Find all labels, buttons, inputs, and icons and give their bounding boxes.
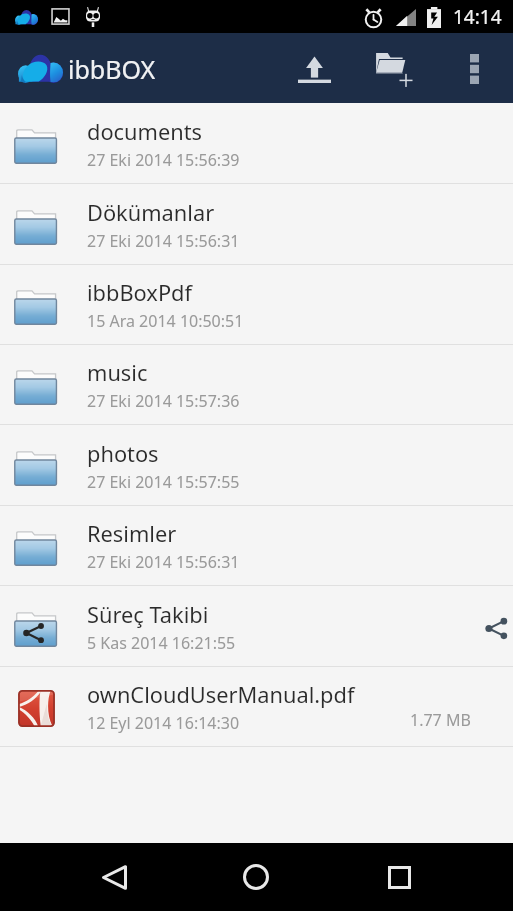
staticText: ownCloudUserManual.pdf: [87, 680, 355, 710]
staticText: 27 Eki 2014 15:56:31: [87, 551, 240, 573]
staticText: 27 Eki 2014 15:57:55: [87, 471, 240, 493]
button[interactable]: Home: [224, 845, 288, 909]
button[interactable]: Süreç Takibi: [0, 587, 513, 667]
button[interactable]: Upload: [282, 33, 346, 103]
button[interactable]: music: [0, 345, 513, 425]
staticText: photos: [87, 439, 159, 469]
button[interactable]: Back: [82, 845, 146, 909]
staticText: 12 Eyl 2014 16:14:30: [87, 712, 240, 734]
button[interactable]: New folder: [357, 33, 429, 103]
staticText: 14:14: [453, 4, 502, 30]
staticText: 27 Eki 2014 15:56:31: [87, 230, 240, 252]
button[interactable]: Share: [467, 587, 513, 666]
staticText: 1.77 MB: [410, 709, 471, 731]
staticText: documents: [87, 117, 202, 147]
staticText: 5 Kas 2014 16:21:55: [87, 632, 236, 654]
button[interactable]: photos: [0, 426, 513, 506]
staticText: music: [87, 358, 148, 388]
staticText: ibbBoxPdf: [87, 278, 192, 308]
button[interactable]: Recents: [367, 845, 431, 909]
button[interactable]: ownCloudUserManual.pdf: [0, 667, 513, 747]
staticText: 27 Eki 2014 15:57:36: [87, 390, 240, 412]
staticText: Süreç Takibi: [87, 600, 209, 630]
button[interactable]: Dökümanlar: [0, 185, 513, 265]
staticText: 15 Ara 2014 10:50:51: [87, 310, 244, 332]
staticText: ibbBOX: [68, 52, 156, 86]
button[interactable]: Resimler: [0, 506, 513, 586]
staticText: Dökümanlar: [87, 198, 215, 228]
button[interactable]: documents: [0, 104, 513, 184]
button[interactable]: ibbBoxPdf: [0, 265, 513, 345]
staticText: 27 Eki 2014 15:56:39: [87, 149, 240, 171]
staticText: Resimler: [87, 519, 177, 549]
button[interactable]: More options: [441, 33, 505, 103]
